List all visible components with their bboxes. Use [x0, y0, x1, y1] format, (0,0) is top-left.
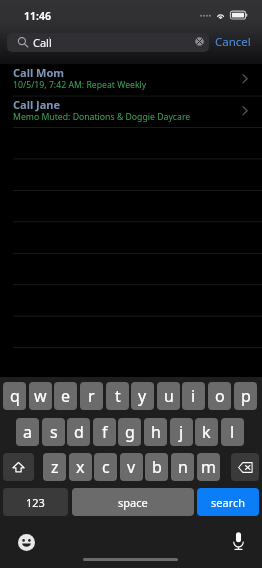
staticText: f: [102, 421, 108, 443]
button[interactable]: o: [208, 382, 231, 410]
staticText: 11:46: [24, 9, 51, 23]
staticText: d: [74, 421, 84, 443]
button[interactable]: i: [182, 382, 205, 410]
button[interactable]: Call Jane: [0, 96, 262, 127]
button[interactable]: u: [157, 382, 180, 410]
staticText: search: [211, 495, 246, 510]
button[interactable]: space: [72, 488, 194, 516]
button[interactable]: Clear text: [195, 37, 204, 46]
button[interactable]: Call Mom: [0, 64, 262, 95]
button[interactable]: z: [43, 453, 66, 481]
staticText: e: [61, 385, 71, 407]
button[interactable]: Cancel: [211, 32, 255, 52]
staticText: x: [76, 456, 85, 478]
button[interactable]: x: [69, 453, 92, 481]
staticText: w: [34, 385, 47, 407]
button[interactable]: k: [195, 418, 218, 446]
button[interactable]: Shift: [3, 453, 34, 481]
staticText: p: [241, 385, 251, 407]
button[interactable]: v: [120, 453, 143, 481]
staticText: c: [102, 456, 110, 478]
staticText: k: [202, 421, 211, 443]
button[interactable]: 123: [3, 488, 68, 516]
staticText: n: [178, 456, 188, 478]
button[interactable]: Dictation: [233, 531, 244, 551]
staticText: 10/5/19, 7:42 AM: Repeat Weekly: [13, 79, 147, 91]
button[interactable]: c: [94, 453, 117, 481]
button[interactable]: w: [29, 382, 52, 410]
button[interactable]: f: [93, 418, 116, 446]
button[interactable]: b: [145, 453, 168, 481]
button[interactable]: q: [3, 382, 26, 410]
staticText: o: [215, 385, 225, 407]
staticText: Memo Muted: Donations & Doggie Daycare: [13, 111, 191, 123]
button[interactable]: t: [106, 382, 129, 410]
staticText: Call Mom: [13, 65, 65, 80]
button[interactable]: [7, 33, 209, 52]
button[interactable]: h: [144, 418, 167, 446]
button[interactable]: r: [80, 382, 103, 410]
staticText: t: [115, 385, 121, 407]
button[interactable]: l: [221, 418, 244, 446]
button[interactable]: p: [234, 382, 257, 410]
staticText: m: [201, 456, 216, 478]
staticText: u: [164, 385, 174, 407]
staticText: r: [88, 385, 95, 407]
button[interactable]: Emoji keyboard: [18, 534, 35, 551]
staticText: z: [51, 456, 59, 478]
staticText: s: [50, 421, 58, 443]
staticText: Call: [33, 35, 52, 50]
button[interactable]: n: [171, 453, 194, 481]
staticText: Cancel: [215, 34, 251, 50]
staticText: i: [191, 385, 196, 407]
staticText: 123: [26, 495, 45, 510]
staticText: j: [179, 421, 184, 443]
button[interactable]: g: [118, 418, 141, 446]
staticText: a: [23, 421, 32, 443]
staticText: y: [138, 385, 147, 407]
staticText: q: [10, 385, 20, 407]
button[interactable]: j: [170, 418, 193, 446]
staticText: space: [118, 495, 148, 510]
button[interactable]: search: [197, 488, 259, 516]
button[interactable]: m: [197, 453, 220, 481]
staticText: g: [125, 421, 135, 443]
button[interactable]: y: [131, 382, 154, 410]
button[interactable]: a: [16, 418, 39, 446]
button[interactable]: Delete: [231, 453, 259, 481]
button[interactable]: s: [42, 418, 65, 446]
button[interactable]: e: [54, 382, 77, 410]
staticText: Call Jane: [13, 97, 61, 112]
staticText: l: [230, 421, 235, 443]
button[interactable]: d: [67, 418, 90, 446]
staticText: b: [152, 456, 162, 478]
staticText: v: [127, 456, 136, 478]
staticText: h: [151, 421, 161, 443]
